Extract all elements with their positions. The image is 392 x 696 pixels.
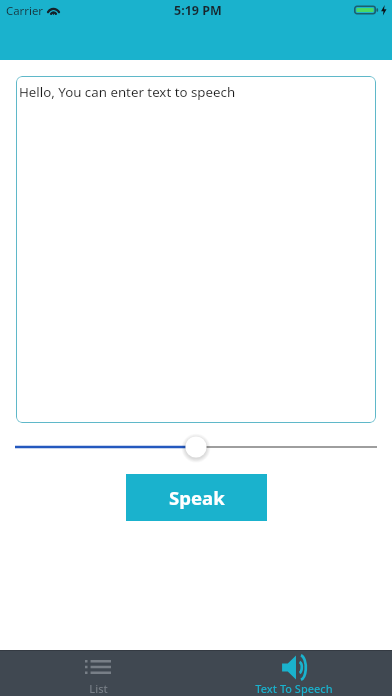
other: Text To Speech bbox=[281, 654, 308, 681]
other: Battery charging bbox=[354, 4, 386, 16]
button[interactable] bbox=[0, 424, 392, 470]
staticText: List bbox=[89, 681, 108, 696]
button[interactable]: Speak bbox=[126, 474, 267, 521]
staticText: Carrier bbox=[6, 3, 44, 19]
button[interactable]: List bbox=[0, 650, 196, 696]
button[interactable]: Text To Speech bbox=[196, 650, 392, 696]
other: List bbox=[85, 660, 111, 674]
staticText: Text To Speech bbox=[255, 681, 333, 696]
staticText: Speak bbox=[169, 485, 225, 510]
staticText: Hello, You can enter text to speech bbox=[19, 83, 236, 101]
button[interactable]: Hello, You can enter text to speech bbox=[16, 76, 376, 423]
staticText: 5:19 PM bbox=[174, 2, 222, 19]
